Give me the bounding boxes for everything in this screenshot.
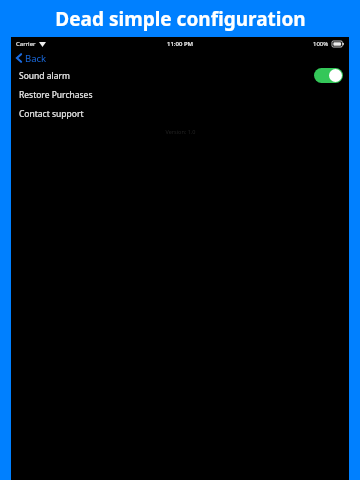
button[interactable]: Sound alarm (11, 66, 349, 85)
staticText: Back (25, 52, 47, 65)
button[interactable]: Restore Purchases (11, 85, 349, 104)
staticText: 11:00 PM (167, 40, 194, 48)
staticText: Carrier (16, 40, 36, 48)
staticText: Restore Purchases (19, 89, 93, 101)
staticText: Dead simple configuration (55, 6, 306, 32)
staticText: Sound alarm (19, 70, 70, 82)
button[interactable]: Contact support (11, 104, 349, 123)
button[interactable]: Sound alarm toggle (314, 68, 343, 83)
staticText: Version: 1.0 (165, 128, 196, 135)
staticText: 100% (313, 40, 329, 48)
button[interactable]: Back (11, 50, 47, 66)
staticText: Contact support (19, 108, 84, 120)
